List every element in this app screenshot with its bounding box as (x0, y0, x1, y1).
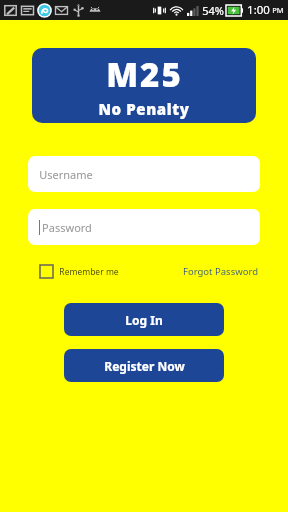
staticText: Register Now (104, 358, 185, 374)
button[interactable]: Password (28, 209, 260, 245)
button[interactable]: Username (28, 156, 260, 192)
staticText: No Penalty (98, 99, 190, 119)
staticText: Remember me (59, 266, 119, 278)
button[interactable]: Log In (64, 303, 224, 336)
staticText: 1:00 (247, 2, 270, 18)
staticText: Forgot Password (183, 265, 258, 278)
staticText: PM (272, 5, 284, 15)
button[interactable]: Register Now (64, 349, 224, 382)
staticText: Username (39, 167, 93, 182)
staticText: M25 (106, 52, 183, 97)
staticText: 54% (202, 3, 224, 18)
button[interactable]: Remember me (28, 263, 123, 280)
staticText: Password (42, 220, 92, 235)
staticText: Log In (125, 312, 163, 328)
button[interactable]: Forgot Password (181, 263, 260, 280)
